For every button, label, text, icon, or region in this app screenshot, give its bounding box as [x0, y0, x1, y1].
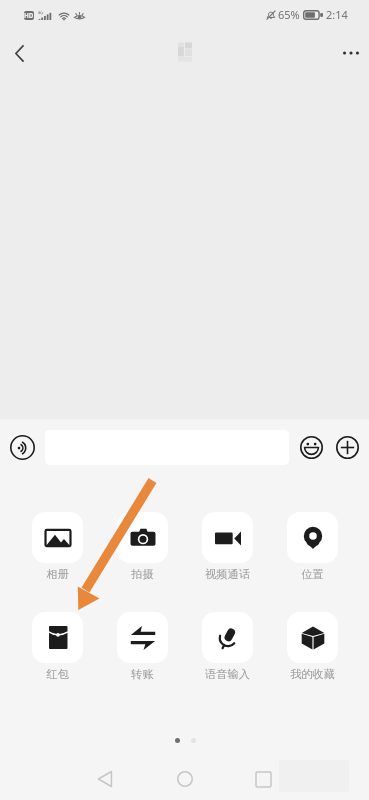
button[interactable]: Back — [77, 757, 133, 800]
button[interactable]: 语音输入 — [189, 612, 265, 681]
staticText: 转账 — [131, 667, 154, 681]
button[interactable]: 拍摄 — [104, 512, 180, 581]
staticText: 红包 — [46, 667, 69, 681]
button[interactable]: More actions — [334, 434, 360, 460]
button[interactable]: 我的收藏 — [274, 612, 350, 681]
button[interactable]: Emoji — [298, 434, 324, 460]
staticText: 2:14 — [326, 7, 348, 22]
button[interactable]: Recent apps — [235, 757, 291, 800]
staticText: 相册 — [46, 567, 69, 581]
button[interactable]: Voice message — [4, 429, 40, 465]
staticText: 语音输入 — [205, 667, 250, 681]
staticText: 视频通话 — [205, 567, 250, 581]
button[interactable]: 视频通话 — [189, 512, 265, 581]
button[interactable]: 位置 — [274, 512, 350, 581]
button[interactable]: More options — [331, 28, 369, 78]
button[interactable]: 红包 — [19, 612, 95, 681]
staticText: 拍摄 — [131, 567, 154, 581]
button[interactable]: Home — [157, 757, 213, 800]
button[interactable]: 转账 — [104, 612, 180, 681]
button[interactable]: 相册 — [19, 512, 95, 581]
staticText: HD — [24, 11, 34, 20]
staticText: 我的收藏 — [290, 667, 335, 681]
staticText: 65% — [278, 7, 300, 22]
staticText: 位置 — [301, 567, 324, 581]
button[interactable]: Back — [0, 28, 38, 78]
